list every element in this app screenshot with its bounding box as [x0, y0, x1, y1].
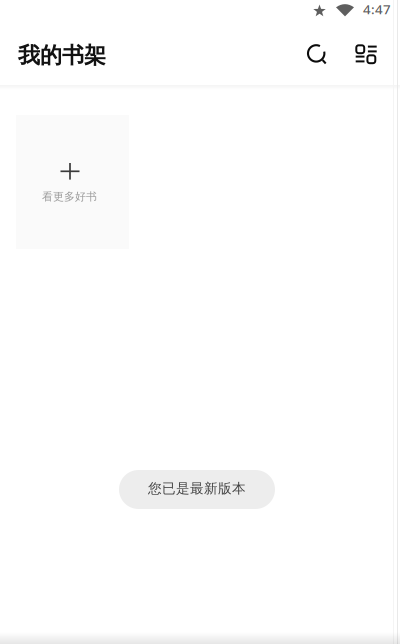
button[interactable]: Search [300, 32, 344, 78]
staticText: 看更多好书 [42, 190, 97, 203]
staticText: 您已是最新版本 [148, 480, 246, 497]
button[interactable]: 您已是最新版本 [119, 470, 275, 509]
staticText: 4:47 [363, 0, 391, 18]
staticText: 我的书架 [18, 42, 106, 69]
button[interactable]: 看更多好书 [16, 115, 129, 249]
button[interactable]: Manage bookshelf [344, 32, 388, 78]
